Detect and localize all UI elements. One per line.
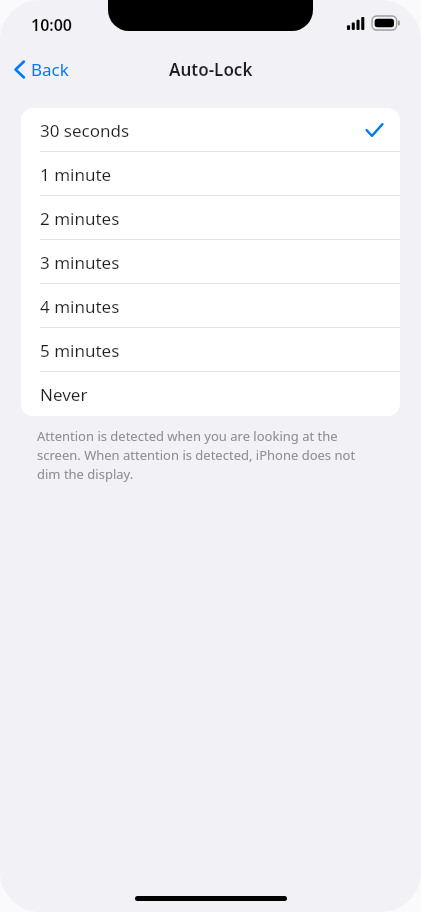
staticText: Attention is detected when you are looki… <box>37 427 372 483</box>
staticText: Auto-Lock <box>169 58 253 81</box>
staticText: 10:00 <box>31 14 73 36</box>
button[interactable]: 5 minutes <box>21 328 400 372</box>
staticText: 30 seconds <box>40 119 130 142</box>
other: Selected <box>366 123 383 137</box>
staticText: 2 minutes <box>40 207 120 230</box>
staticText: 1 minute <box>40 163 112 186</box>
button[interactable]: 1 minute <box>21 152 400 196</box>
staticText: 4 minutes <box>40 295 120 318</box>
staticText: Never <box>40 383 88 406</box>
staticText: Back <box>31 58 69 81</box>
button[interactable]: 3 minutes <box>21 240 400 284</box>
button[interactable]: 30 seconds <box>21 108 400 152</box>
button[interactable]: Never <box>21 372 400 416</box>
staticText: 3 minutes <box>40 251 120 274</box>
button[interactable]: 2 minutes <box>21 196 400 240</box>
staticText: 5 minutes <box>40 339 120 362</box>
button[interactable]: 4 minutes <box>21 284 400 328</box>
button[interactable]: Back <box>8 52 79 86</box>
